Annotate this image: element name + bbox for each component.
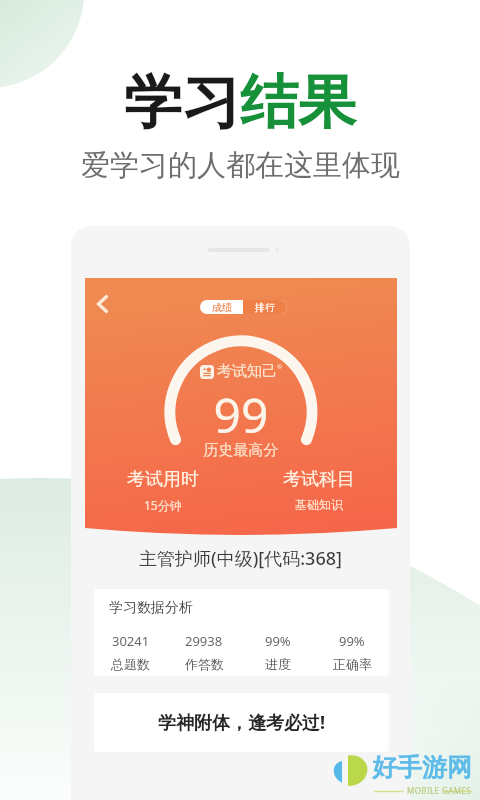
staticText: 考试知己 (217, 362, 277, 381)
staticText: ® (277, 363, 282, 371)
button[interactable]: 排行 (243, 300, 287, 314)
button[interactable]: 学习数据分析 (94, 589, 389, 676)
staticText: 总题数 (111, 656, 150, 672)
staticText: 主管护师(中级)[代码:368] (71, 546, 410, 571)
staticText: 结果 (240, 66, 356, 139)
staticText: 30241 (112, 632, 150, 650)
staticText: MOBILE GAMES (407, 785, 471, 796)
staticText: 99 (85, 382, 397, 447)
staticText: 99% (265, 632, 291, 650)
staticText: 进度 (265, 656, 291, 672)
staticText: 作答数 (185, 656, 224, 672)
button[interactable]: 学神附体，逢考必过! (94, 693, 389, 752)
staticText: 排行 (255, 301, 275, 314)
staticText: 学习数据分析 (109, 599, 193, 617)
staticText: 基础知识 (295, 497, 343, 512)
staticText: 历史最高分 (85, 441, 397, 460)
staticText: 考试科目 (283, 468, 355, 491)
staticText: 成绩 (212, 301, 232, 314)
staticText: 爱学习的人都在这里体现 (81, 147, 400, 184)
staticText: 正确率 (333, 656, 372, 672)
button[interactable]: Back (87, 290, 115, 318)
staticText: 好手游网 (372, 752, 472, 783)
button[interactable]: 成绩 (200, 300, 243, 314)
staticText: 学习 (124, 66, 240, 139)
staticText: 15分钟 (144, 497, 182, 513)
staticText: 学神附体，逢考必过! (158, 710, 326, 735)
staticText: 29938 (185, 632, 223, 650)
staticText: 99% (339, 632, 365, 650)
staticText: 考试用时 (127, 468, 199, 491)
